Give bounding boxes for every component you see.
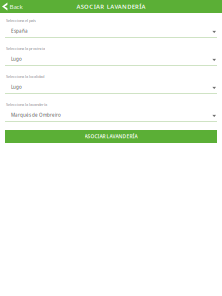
staticText: Marqués de Ombreiro xyxy=(11,112,61,118)
staticText: Lugo xyxy=(11,56,22,62)
staticText: Selecciona la lavandería xyxy=(6,102,47,107)
button[interactable]: Selecciona la provincia xyxy=(5,38,217,66)
staticText: España xyxy=(11,28,28,34)
staticText: ASOCIAR LAVANDERÍA xyxy=(76,2,146,10)
button[interactable]: ASOCIAR LAVANDERÍA xyxy=(5,130,217,143)
staticText: Selecciona la localidad xyxy=(6,74,44,79)
button[interactable]: Selecciona la localidad xyxy=(5,66,217,94)
staticText: Selecciona el país xyxy=(6,18,36,23)
staticText: Selecciona la provincia xyxy=(6,46,45,51)
button[interactable]: Selecciona la lavandería xyxy=(5,94,217,122)
staticText: Back xyxy=(9,2,22,11)
staticText: Lugo xyxy=(11,84,22,90)
button[interactable]: Back xyxy=(0,0,27,13)
staticText: ASOCIAR LAVANDERÍA xyxy=(84,133,137,140)
button[interactable]: Selecciona el país xyxy=(5,13,217,38)
